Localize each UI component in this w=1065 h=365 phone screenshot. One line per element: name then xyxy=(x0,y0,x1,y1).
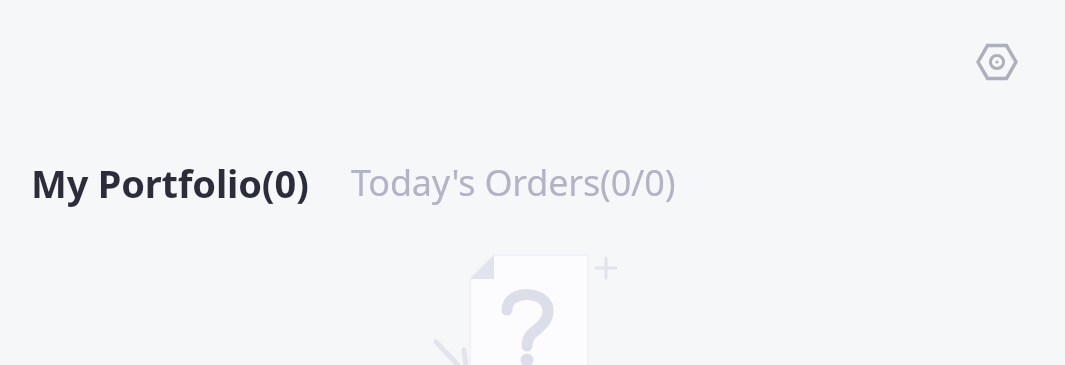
button[interactable]: Settings xyxy=(967,32,1027,92)
staticText: Today's Orders(0/0) xyxy=(351,158,676,207)
button[interactable]: Today's Orders(0/0) xyxy=(351,150,676,215)
staticText: My Portfolio(0) xyxy=(31,157,309,209)
button[interactable]: My Portfolio(0) xyxy=(31,149,309,217)
